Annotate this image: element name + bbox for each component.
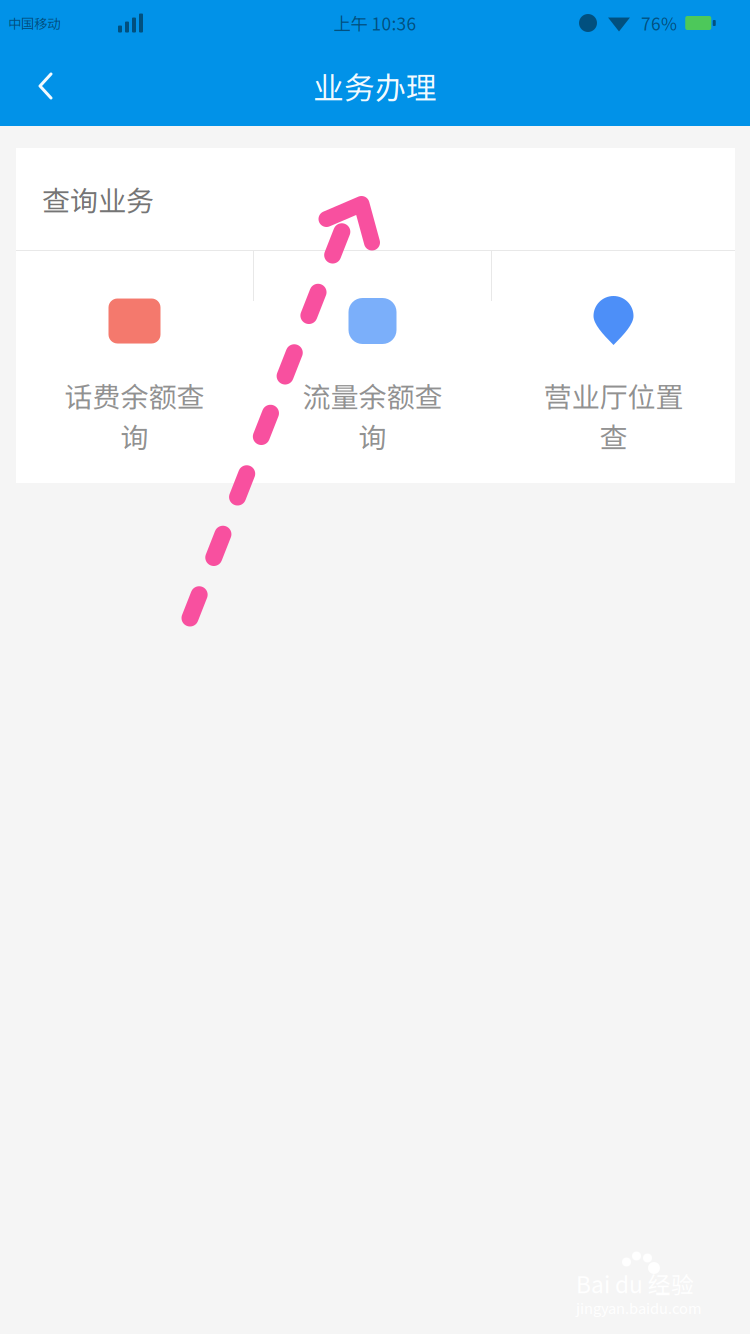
- staticText: 营业厅位置: [543, 375, 683, 415]
- staticText: 询: [358, 415, 386, 456]
- staticText: 业务办理: [313, 64, 437, 108]
- staticText: 上午 10:36: [333, 10, 416, 36]
- staticText: 流量余额查: [302, 375, 442, 415]
- button[interactable]: 营业厅位置: [492, 251, 735, 483]
- staticText: 中国移动: [8, 13, 60, 33]
- staticText: 查: [599, 415, 627, 456]
- staticText: 查询业务: [42, 179, 154, 219]
- staticText: Bai du 经验: [576, 1267, 694, 1300]
- button[interactable]: 流量余额查: [254, 251, 491, 483]
- staticText: 询: [120, 415, 148, 456]
- staticText: 话费余额查: [64, 375, 204, 415]
- button[interactable]: Back: [0, 46, 82, 126]
- staticText: 76%: [641, 10, 677, 36]
- button[interactable]: 话费余额查: [16, 251, 253, 483]
